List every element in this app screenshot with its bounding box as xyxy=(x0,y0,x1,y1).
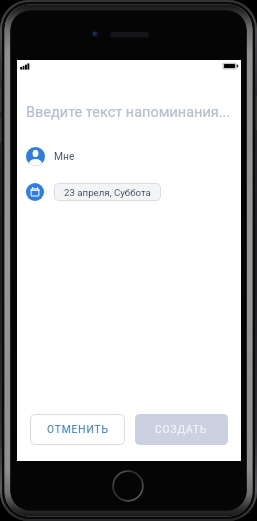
button[interactable]: Получатель xyxy=(22,143,222,169)
other: Получатель xyxy=(26,147,45,166)
staticText: Введите текст напоминания... xyxy=(26,104,231,121)
staticText: СОЗДАТЬ xyxy=(155,424,208,436)
button[interactable]: ОТМЕНИТЬ xyxy=(30,414,125,445)
staticText: 23 апреля, Суббота xyxy=(64,187,151,198)
button[interactable]: Дата xyxy=(22,181,222,203)
button[interactable]: СОЗДАТЬ xyxy=(135,414,228,445)
staticText: ОТМЕНИТЬ xyxy=(47,424,109,436)
other: Дата xyxy=(26,183,44,201)
staticText: Мне xyxy=(54,150,75,162)
